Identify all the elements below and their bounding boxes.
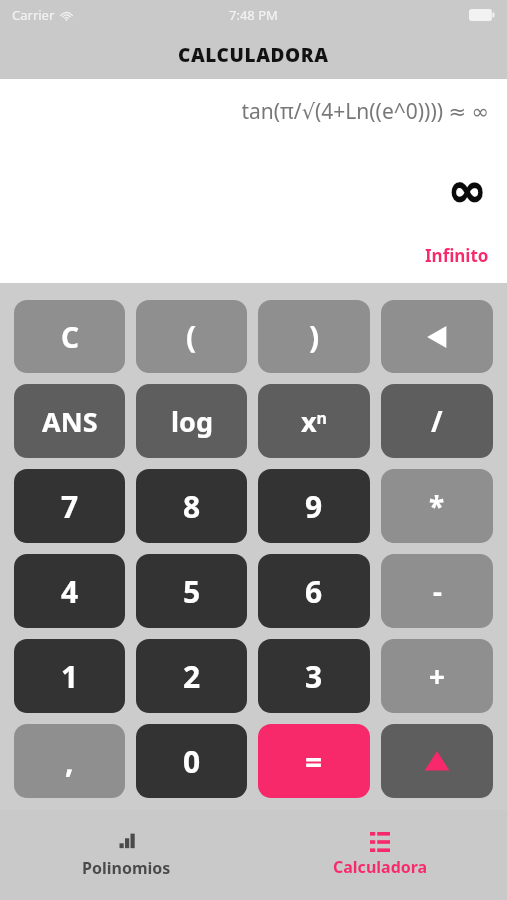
button[interactable]: Calculadora (253, 810, 507, 900)
button[interactable]: 2 (136, 639, 247, 713)
staticText: Polinomios (82, 857, 171, 879)
button[interactable]: C (14, 300, 125, 373)
staticText: 6 (305, 571, 323, 612)
staticText: 3 (305, 656, 323, 697)
button[interactable]: 9 (258, 469, 370, 543)
button[interactable]: 7 (14, 469, 125, 543)
staticText: Carrier (12, 6, 55, 24)
staticText: 7 (61, 486, 79, 527)
staticText: xn (301, 403, 328, 440)
button[interactable]: + (381, 639, 493, 713)
button[interactable]: 1 (14, 639, 125, 713)
staticText: 1 (61, 656, 79, 697)
button[interactable]: Polinomios (0, 810, 253, 900)
button[interactable]: 4 (14, 554, 125, 628)
button[interactable]: Up (381, 724, 493, 798)
button[interactable]: Delete (381, 300, 493, 373)
staticText: ) (309, 316, 320, 357)
button[interactable]: / (381, 384, 493, 458)
staticText: / (431, 402, 443, 440)
staticText: 7:48 PM (229, 6, 278, 24)
staticText: 4 (61, 571, 79, 612)
button[interactable]: 8 (136, 469, 247, 543)
button[interactable]: 0 (136, 724, 247, 798)
staticText: = (305, 741, 323, 782)
staticText: 9 (305, 486, 323, 527)
staticText: 2 (183, 656, 201, 697)
button[interactable]: = (258, 724, 370, 798)
staticText: CALCULADORA (178, 42, 329, 68)
button[interactable]: * (381, 469, 493, 543)
staticText: ∞ (448, 163, 487, 217)
staticText: log (171, 403, 213, 440)
staticText: C (61, 318, 79, 356)
staticText: 8 (183, 486, 201, 527)
button[interactable]: - (381, 554, 493, 628)
staticText: , (65, 741, 74, 782)
staticText: Infinito (425, 244, 489, 267)
staticText: * (429, 487, 445, 525)
button[interactable]: 3 (258, 639, 370, 713)
staticText: Calculadora (333, 856, 428, 878)
button[interactable]: 5 (136, 554, 247, 628)
staticText: 5 (183, 571, 201, 612)
button[interactable]: ) (258, 300, 370, 373)
button[interactable]: , (14, 724, 125, 798)
button[interactable]: ( (136, 300, 247, 373)
staticText: ANS (42, 403, 98, 440)
button[interactable]: ANS (14, 384, 125, 458)
staticText: tan(π/√(4+Ln((e^0)))) ≈ ∞ (241, 97, 489, 126)
staticText: - (433, 572, 442, 610)
button[interactable]: log (136, 384, 247, 458)
button[interactable]: xn (258, 384, 370, 458)
staticText: ( (186, 316, 197, 357)
button[interactable]: 6 (258, 554, 370, 628)
staticText: 0 (183, 741, 201, 782)
staticText: + (429, 657, 446, 695)
